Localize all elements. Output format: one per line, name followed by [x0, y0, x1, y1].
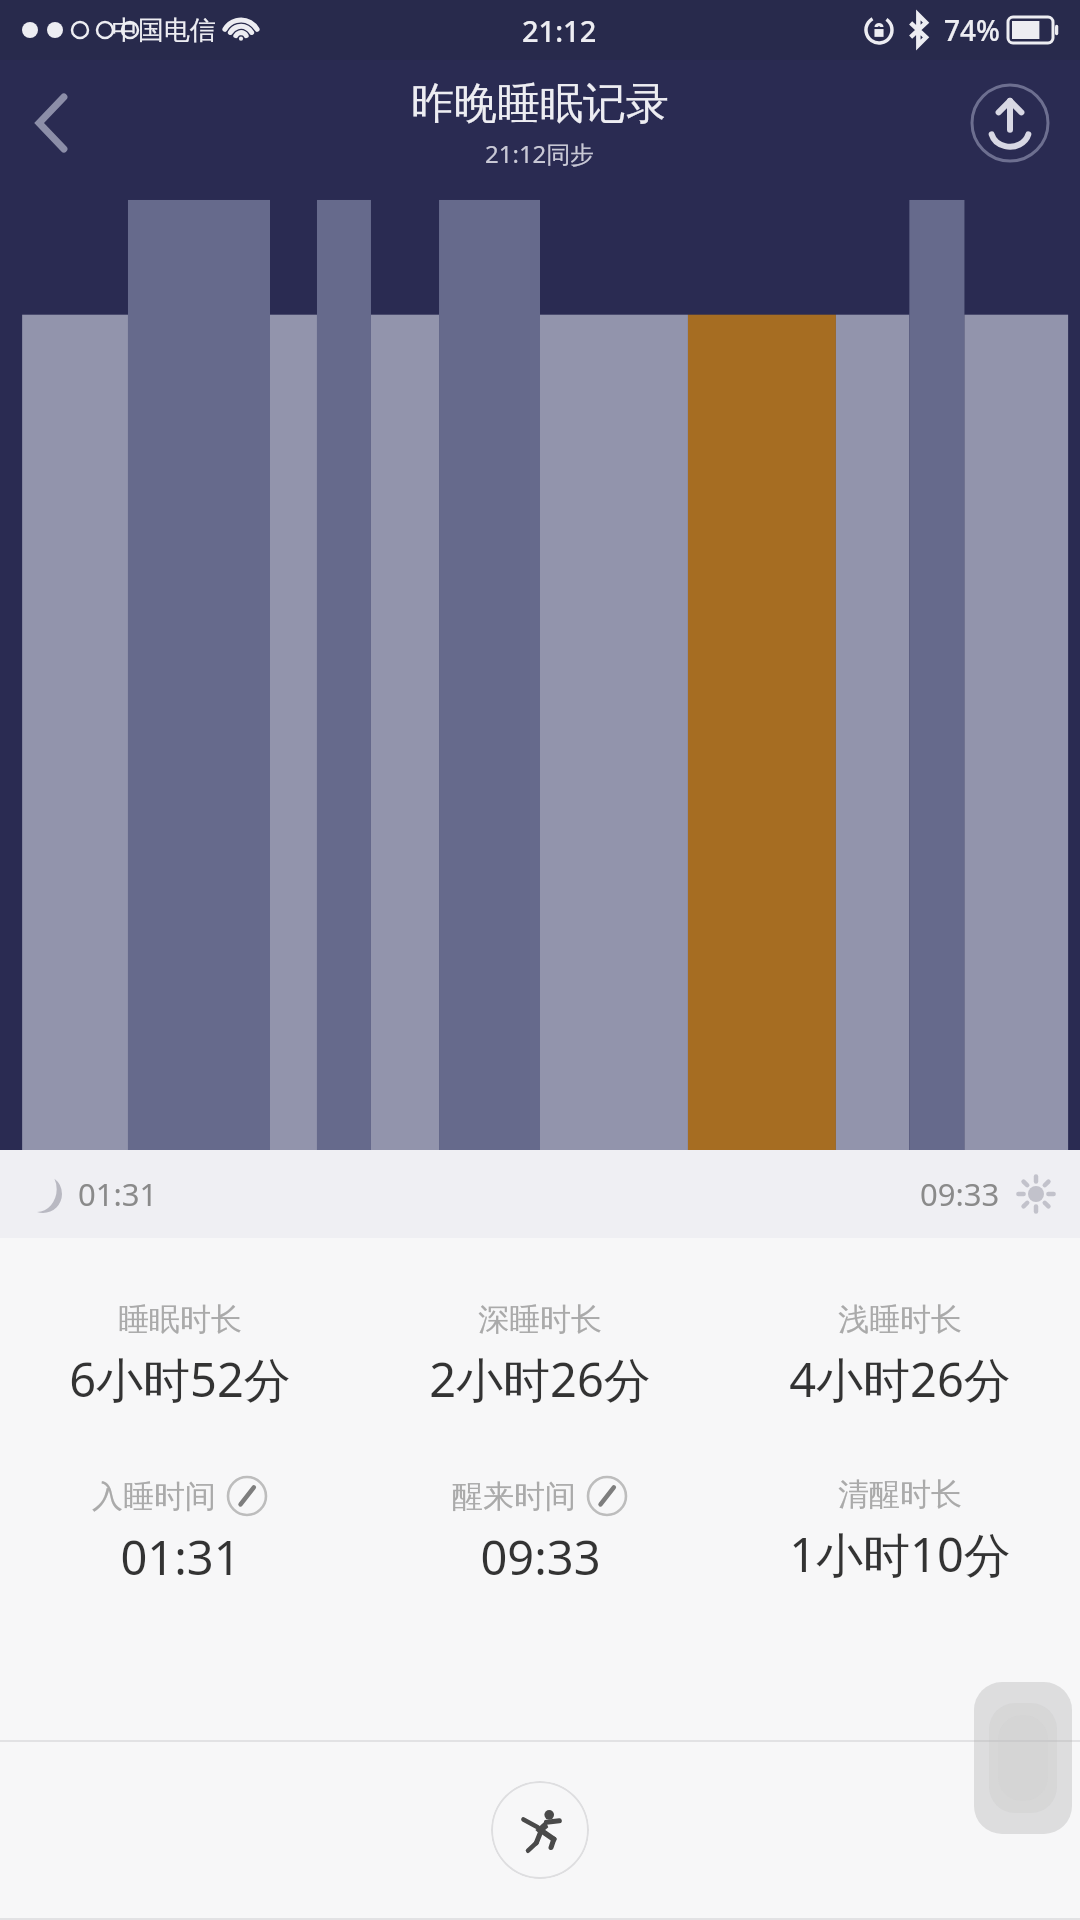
staticText: 浅睡时长 [838, 1300, 962, 1339]
staticText: 09:33 [480, 1525, 601, 1589]
staticText: 21:12同步 [485, 137, 595, 170]
button[interactable]: 清醒时长 [720, 1471, 1080, 1590]
staticText: 09:33 [920, 1173, 1000, 1215]
button[interactable]: 浅睡时长 [720, 1296, 1080, 1415]
staticText: 74% [944, 11, 1000, 49]
button[interactable]: 入睡时间 [0, 1471, 360, 1593]
button[interactable]: Share [970, 83, 1050, 163]
staticText: 21:12 [522, 11, 597, 50]
staticText: 1小时10分 [789, 1522, 1011, 1586]
staticText: 6小时52分 [69, 1347, 291, 1411]
staticText: 醒来时间 [452, 1477, 576, 1516]
button[interactable]: Assistive touch [974, 1682, 1072, 1834]
button[interactable]: 深睡时长 [360, 1296, 720, 1415]
staticText: 深睡时长 [478, 1300, 602, 1339]
staticText: 2小时26分 [429, 1347, 651, 1411]
staticText: 睡眠时长 [118, 1300, 242, 1339]
button[interactable]: Back [6, 77, 98, 169]
staticText: 01:31 [78, 1173, 158, 1215]
button[interactable]: 醒来时间 [360, 1471, 720, 1593]
staticText: 4小时26分 [789, 1347, 1011, 1411]
button[interactable]: 睡眠时长 [0, 1296, 360, 1415]
staticText: 清醒时长 [838, 1475, 962, 1514]
staticText: 01:31 [120, 1525, 241, 1589]
staticText: 昨晚睡眠记录 [411, 77, 669, 131]
staticText: 中国电信 [112, 14, 216, 47]
button[interactable]: Activity [491, 1781, 589, 1879]
staticText: 入睡时间 [92, 1477, 216, 1516]
